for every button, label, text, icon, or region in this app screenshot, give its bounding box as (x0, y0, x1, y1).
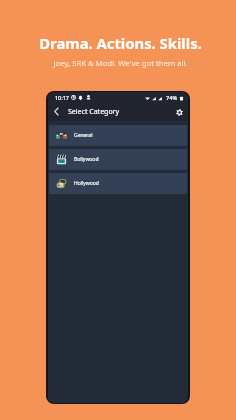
staticText: Hollywood (74, 180, 99, 187)
button[interactable]: General (49, 125, 187, 146)
button[interactable]: Bollywood (49, 149, 187, 170)
button[interactable]: Settings (174, 107, 185, 118)
staticText: Joey, SRK & Modi. We've got them all. (53, 58, 188, 69)
staticText: Drama. Actions. Skills. (39, 33, 202, 53)
staticText: Bollywood (74, 156, 99, 163)
staticText: 10:17 (55, 94, 69, 101)
staticText: Select Category (68, 107, 120, 117)
button[interactable]: Hollywood (49, 173, 187, 194)
staticText: General (74, 132, 93, 139)
button[interactable]: Back (48, 103, 65, 120)
staticText: 74% (166, 94, 178, 102)
